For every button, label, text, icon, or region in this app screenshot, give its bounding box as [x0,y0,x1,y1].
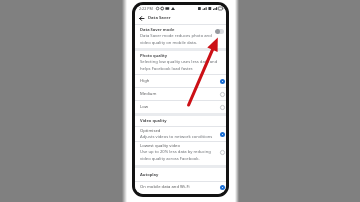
staticText: Low [140,104,220,110]
staticText: Autoplay [140,172,159,178]
staticText: Data Saver [148,15,171,21]
staticText: Photo quality [140,53,168,59]
staticText: 2:22 PM [139,6,153,11]
staticText: On mobile data and Wi-Fi [140,184,220,190]
staticText: Selecting low quality uses less data and… [140,59,223,71]
staticText: Data Saver mode [140,27,175,33]
staticText: Adjusts videos to network conditions [140,134,213,140]
button[interactable]: Lowest quality video [135,142,226,165]
button[interactable]: High [135,75,226,87]
staticText: Medium [140,91,220,97]
button[interactable]: Optimised [135,127,226,141]
staticText: Use up to 20% less data by reducing vide… [140,149,217,161]
button[interactable]: Data Saver mode [135,25,226,48]
button[interactable]: Low [135,101,226,113]
staticText: Optimised [140,128,161,134]
staticText: High [140,78,220,84]
button[interactable]: Data Saver mode toggle [215,29,224,34]
button[interactable]: On mobile data and Wi-Fi [135,182,226,192]
staticText: Data Saver mode reduces photo and video … [140,33,213,45]
button[interactable]: Medium [135,88,226,100]
staticText: Video quality [140,118,167,124]
staticText: Lowest quality video [140,143,180,149]
button[interactable]: Back [138,15,144,21]
